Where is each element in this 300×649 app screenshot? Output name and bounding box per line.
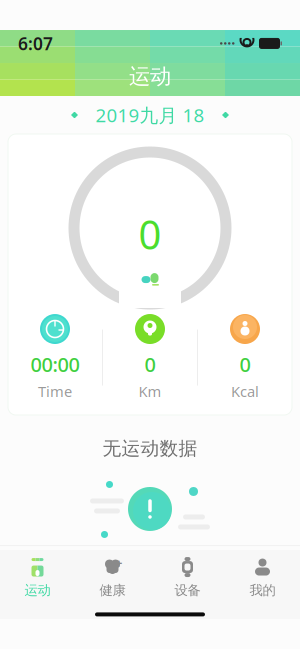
- staticText: 无运动数据: [102, 437, 197, 460]
- staticText: 设备: [174, 582, 200, 598]
- staticText: Kcal: [231, 382, 259, 401]
- staticText: 0: [138, 207, 161, 261]
- button[interactable]: Previous day: [57, 102, 83, 128]
- staticText: 我的: [249, 582, 275, 598]
- button[interactable]: 运动: [0, 550, 75, 604]
- button[interactable]: +: [75, 550, 150, 604]
- staticText: 运动: [129, 63, 171, 90]
- staticText: Time: [38, 382, 72, 401]
- staticText: 6:07: [18, 32, 53, 55]
- staticText: 2019九月 18: [95, 103, 204, 127]
- staticText: 00:00: [30, 351, 79, 378]
- button[interactable]: 设备: [150, 550, 225, 604]
- staticText: Km: [138, 382, 161, 401]
- staticText: 健康: [99, 582, 125, 598]
- button[interactable]: 我的: [225, 550, 300, 604]
- staticText: 0: [239, 351, 250, 378]
- staticText: 运动: [24, 582, 50, 598]
- staticText: 0: [144, 351, 155, 378]
- staticText: +: [115, 555, 122, 571]
- button[interactable]: Next day: [216, 102, 242, 128]
